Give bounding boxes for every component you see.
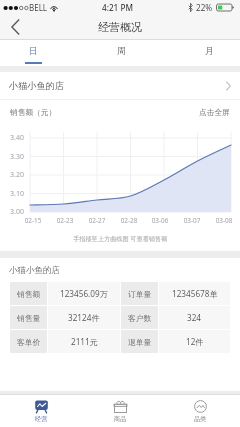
staticText: 12件 [186,336,204,347]
staticText: 12345678单 [172,288,218,299]
staticText: 退单量 [128,337,152,347]
staticText: 03-07 [181,216,203,225]
staticText: 02-27 [86,216,108,225]
staticText: 32124件 [68,312,100,323]
staticText: 销售额（元） [10,108,57,118]
staticText: 销售量 [17,313,41,323]
staticText: 周 [117,46,126,57]
staticText: 品类 [194,415,207,423]
staticText: 小猫小鱼的店 [9,265,60,276]
staticText: 123456.09万 [60,288,108,299]
staticText: 22% [196,2,213,13]
staticText: 324 [187,312,202,323]
button[interactable]: 月 [188,40,230,66]
staticText: 点击全屏 [199,108,230,118]
staticText: 2111元 [71,336,98,347]
staticText: 客单价 [17,337,41,347]
button[interactable]: 点击全屏 [197,105,232,121]
staticText: 客户数 [128,313,152,323]
staticText: 4:21 PM [102,2,133,13]
staticText: 3.20 [10,170,30,180]
staticText: 小猫小鱼的店 [9,80,65,92]
staticText: 日 [29,46,38,57]
button[interactable]: 品类 [180,395,220,427]
staticText: 商品 [114,415,127,423]
staticText: 02-28 [118,216,140,225]
staticText: 03-06 [149,216,171,225]
button[interactable]: 日 [12,40,54,66]
staticText: 03-08 [213,216,235,225]
staticText: 经营 [35,415,48,423]
staticText: 月 [205,46,214,57]
button[interactable]: 周 [100,40,142,66]
button[interactable]: 经营 [21,395,61,427]
staticText: BELL [29,2,48,13]
staticText: 02-15 [22,216,44,225]
staticText: 3.10 [10,189,30,199]
staticText: 订单量 [128,289,152,299]
staticText: 3.30 [10,152,30,162]
staticText: 02-23 [54,216,76,225]
staticText: 销售额 [17,289,41,299]
staticText: 手指移至上方曲线图 可查看销售额 [73,234,168,242]
button[interactable]: Back [4,16,26,38]
button[interactable]: 小猫小鱼的店 [0,72,240,99]
staticText: 经营概况 [98,20,142,34]
staticText: 3.00 [10,207,30,217]
staticText: 3.40 [10,133,30,143]
button[interactable]: 商品 [100,395,140,427]
